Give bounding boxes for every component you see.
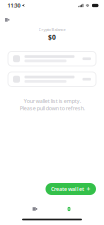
staticText: Your wallet list is empty. Please pull d… [19,97,84,112]
staticText: 11:30 [7,2,20,9]
button[interactable]: Menu [3,16,11,24]
staticText: Crypto Balance [38,27,65,32]
button[interactable]: Markets [52,204,86,214]
button[interactable]: Create wallet [45,183,96,195]
staticText: + [86,185,90,193]
staticText: Create wallet [51,185,84,193]
button[interactable]: Wallets [18,204,52,214]
staticText: $0 [48,33,56,41]
